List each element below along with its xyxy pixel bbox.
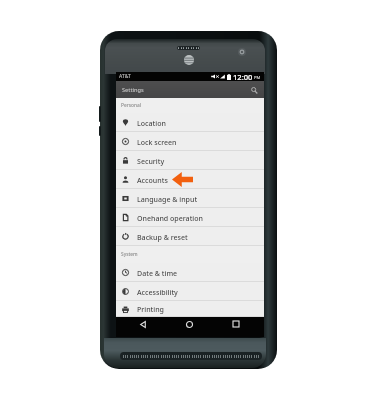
button[interactable]: Date & time (116, 263, 264, 282)
button[interactable]: Search (248, 84, 260, 96)
staticText: 12:00 (233, 72, 253, 81)
button[interactable]: Recents (228, 316, 244, 332)
button[interactable]: Accessibility (116, 282, 264, 301)
staticText: Lock screen (137, 137, 177, 147)
button[interactable]: Home (181, 316, 197, 332)
staticText: Backup & reset (137, 232, 188, 242)
staticText: Language & input (137, 194, 198, 204)
staticText: Settings (122, 86, 144, 94)
button[interactable]: Lock screen (116, 132, 264, 151)
staticText: System (121, 251, 138, 258)
staticText: Accounts (137, 175, 168, 185)
staticText: Accessibility (137, 287, 178, 297)
button[interactable]: Back (135, 316, 151, 332)
button[interactable]: Onehand operation (116, 208, 264, 227)
button[interactable]: Backup & reset (116, 227, 264, 246)
staticText: Printing (137, 304, 164, 314)
staticText: Date & time (137, 268, 178, 278)
staticText: AT&T (119, 73, 131, 80)
button[interactable]: Security (116, 151, 264, 170)
button[interactable]: Printing (116, 301, 264, 317)
button[interactable]: Language & input (116, 189, 264, 208)
staticText: PM (254, 75, 261, 81)
button[interactable]: Accounts (116, 170, 264, 189)
staticText: Personal (121, 102, 142, 109)
staticText: Security (137, 156, 165, 166)
button[interactable]: Location (116, 113, 264, 132)
staticText: Location (137, 118, 166, 128)
staticText: Onehand operation (137, 213, 203, 223)
